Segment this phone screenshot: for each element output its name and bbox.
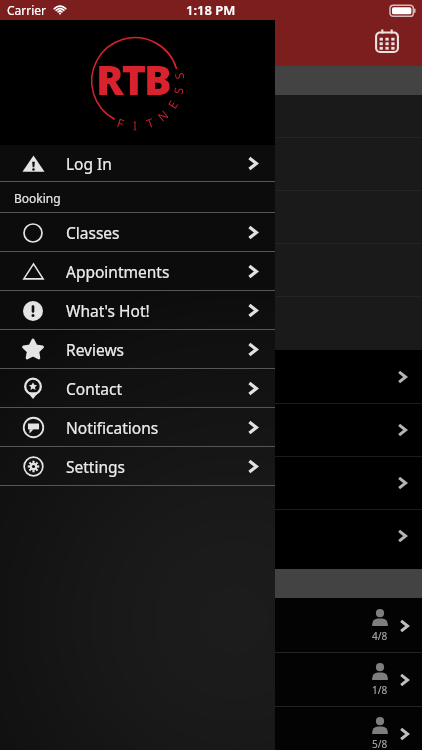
staticText: Contact [66, 378, 123, 399]
button[interactable]: 4/8 [0, 598, 422, 652]
button[interactable]: Contact [0, 369, 275, 408]
button[interactable]: What's Hot! [0, 291, 275, 330]
button[interactable]: Reviews [0, 330, 275, 369]
staticText: Classes [66, 222, 120, 243]
staticText: Booking [14, 190, 61, 206]
staticText: What's Hot! [66, 300, 150, 321]
staticText: 4/8 [372, 629, 388, 643]
staticText: 1:18 PM [186, 1, 236, 19]
button[interactable] [0, 190, 422, 243]
staticText: Reviews [66, 339, 124, 360]
staticText: RTB [96, 51, 170, 107]
button[interactable]: 5/8 [0, 706, 422, 750]
button[interactable] [0, 350, 422, 403]
button[interactable] [0, 137, 422, 190]
button[interactable] [0, 509, 422, 562]
button[interactable]: Settings [0, 447, 275, 486]
staticText: Notifications [66, 417, 159, 438]
button[interactable] [0, 296, 422, 349]
staticText: Carrier [7, 2, 47, 18]
button[interactable] [0, 403, 422, 456]
staticText: Settings [66, 456, 125, 477]
button[interactable]: Notifications [0, 408, 275, 447]
button[interactable]: Log In [0, 145, 275, 182]
staticText: 5/8 [372, 737, 388, 750]
button[interactable]: Calendar [368, 22, 406, 60]
button[interactable]: Classes [0, 213, 275, 252]
staticText: Log In [66, 153, 112, 174]
staticText: Appointments [66, 261, 170, 282]
button[interactable]: 1/8 [0, 652, 422, 706]
button[interactable]: Appointments [0, 252, 275, 291]
button[interactable] [0, 243, 422, 296]
button[interactable] [0, 95, 422, 137]
button[interactable] [0, 456, 422, 509]
staticText: 1/8 [372, 683, 388, 697]
